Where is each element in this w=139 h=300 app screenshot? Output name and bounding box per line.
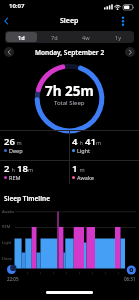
staticText: 06:31 <box>124 276 136 282</box>
staticText: Light <box>77 147 91 154</box>
staticText: 1y <box>115 34 121 41</box>
staticText: 4w <box>82 34 90 41</box>
staticText: 10:07 <box>9 2 25 10</box>
staticText: 41 <box>85 135 96 148</box>
staticText: Deep <box>2 256 12 261</box>
button[interactable]: 4w <box>70 31 102 43</box>
button[interactable]: 1y <box>102 31 134 43</box>
staticText: Total Sleep <box>54 99 85 107</box>
staticText: REM <box>2 224 11 229</box>
button[interactable] <box>1 14 13 28</box>
staticText: m <box>28 166 34 173</box>
staticText: 22:05 <box>7 276 19 282</box>
staticText: h <box>78 139 85 146</box>
staticText: Monday, September 2 <box>35 48 105 57</box>
staticText: Deep <box>9 147 23 154</box>
staticText: 4 <box>72 135 78 148</box>
staticText: m <box>15 139 22 146</box>
button[interactable] <box>4 47 14 57</box>
staticText: 7h 25m <box>45 82 94 100</box>
staticText: 1d <box>18 34 25 41</box>
staticText: m <box>78 166 85 173</box>
staticText: Sleep <box>60 16 79 26</box>
staticText: Awake <box>77 174 94 181</box>
button[interactable] <box>125 47 135 57</box>
staticText: 1 <box>72 162 78 175</box>
staticText: 2 <box>4 162 10 175</box>
staticText: 18 <box>17 162 28 175</box>
staticText: REM <box>9 174 21 181</box>
staticText: m <box>96 139 102 146</box>
button[interactable]: 7d <box>38 31 70 43</box>
staticText: Light <box>2 240 12 245</box>
button[interactable] <box>118 15 128 28</box>
staticText: Awake <box>2 209 15 214</box>
staticText: 26 <box>4 135 15 148</box>
staticText: Sleep Timeline <box>4 194 50 203</box>
staticText: 7d <box>51 34 58 41</box>
button[interactable]: 1d <box>6 32 37 42</box>
staticText: h <box>10 166 17 173</box>
